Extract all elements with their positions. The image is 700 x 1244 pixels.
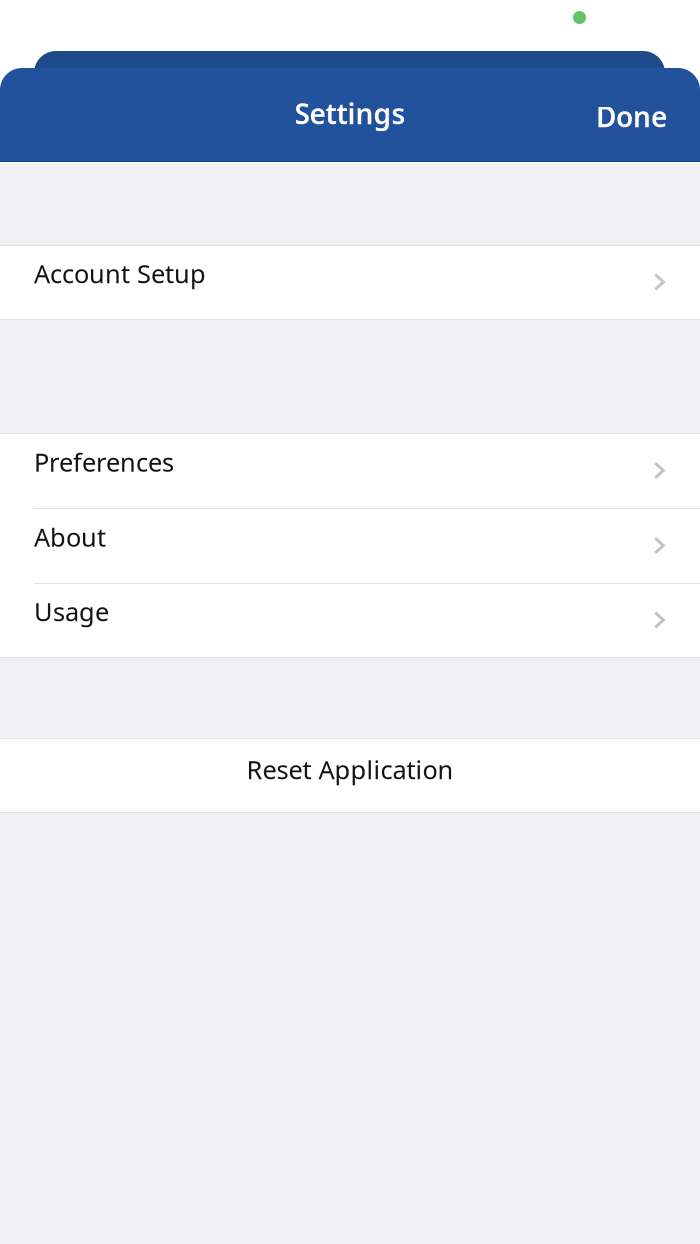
staticText: Usage <box>34 595 109 628</box>
button[interactable]: Account Setup <box>0 246 700 319</box>
button[interactable]: Done <box>578 84 700 145</box>
staticText: About <box>34 520 106 554</box>
staticText: Preferences <box>34 445 174 479</box>
staticText: Settings <box>294 95 405 132</box>
button[interactable]: Reset Application <box>0 739 700 812</box>
staticText: Done <box>596 98 667 135</box>
button[interactable]: About <box>0 509 700 583</box>
staticText: Reset Application <box>246 753 453 786</box>
staticText: Account Setup <box>34 257 206 290</box>
button[interactable]: Usage <box>0 584 700 657</box>
button[interactable]: Preferences <box>0 434 700 508</box>
